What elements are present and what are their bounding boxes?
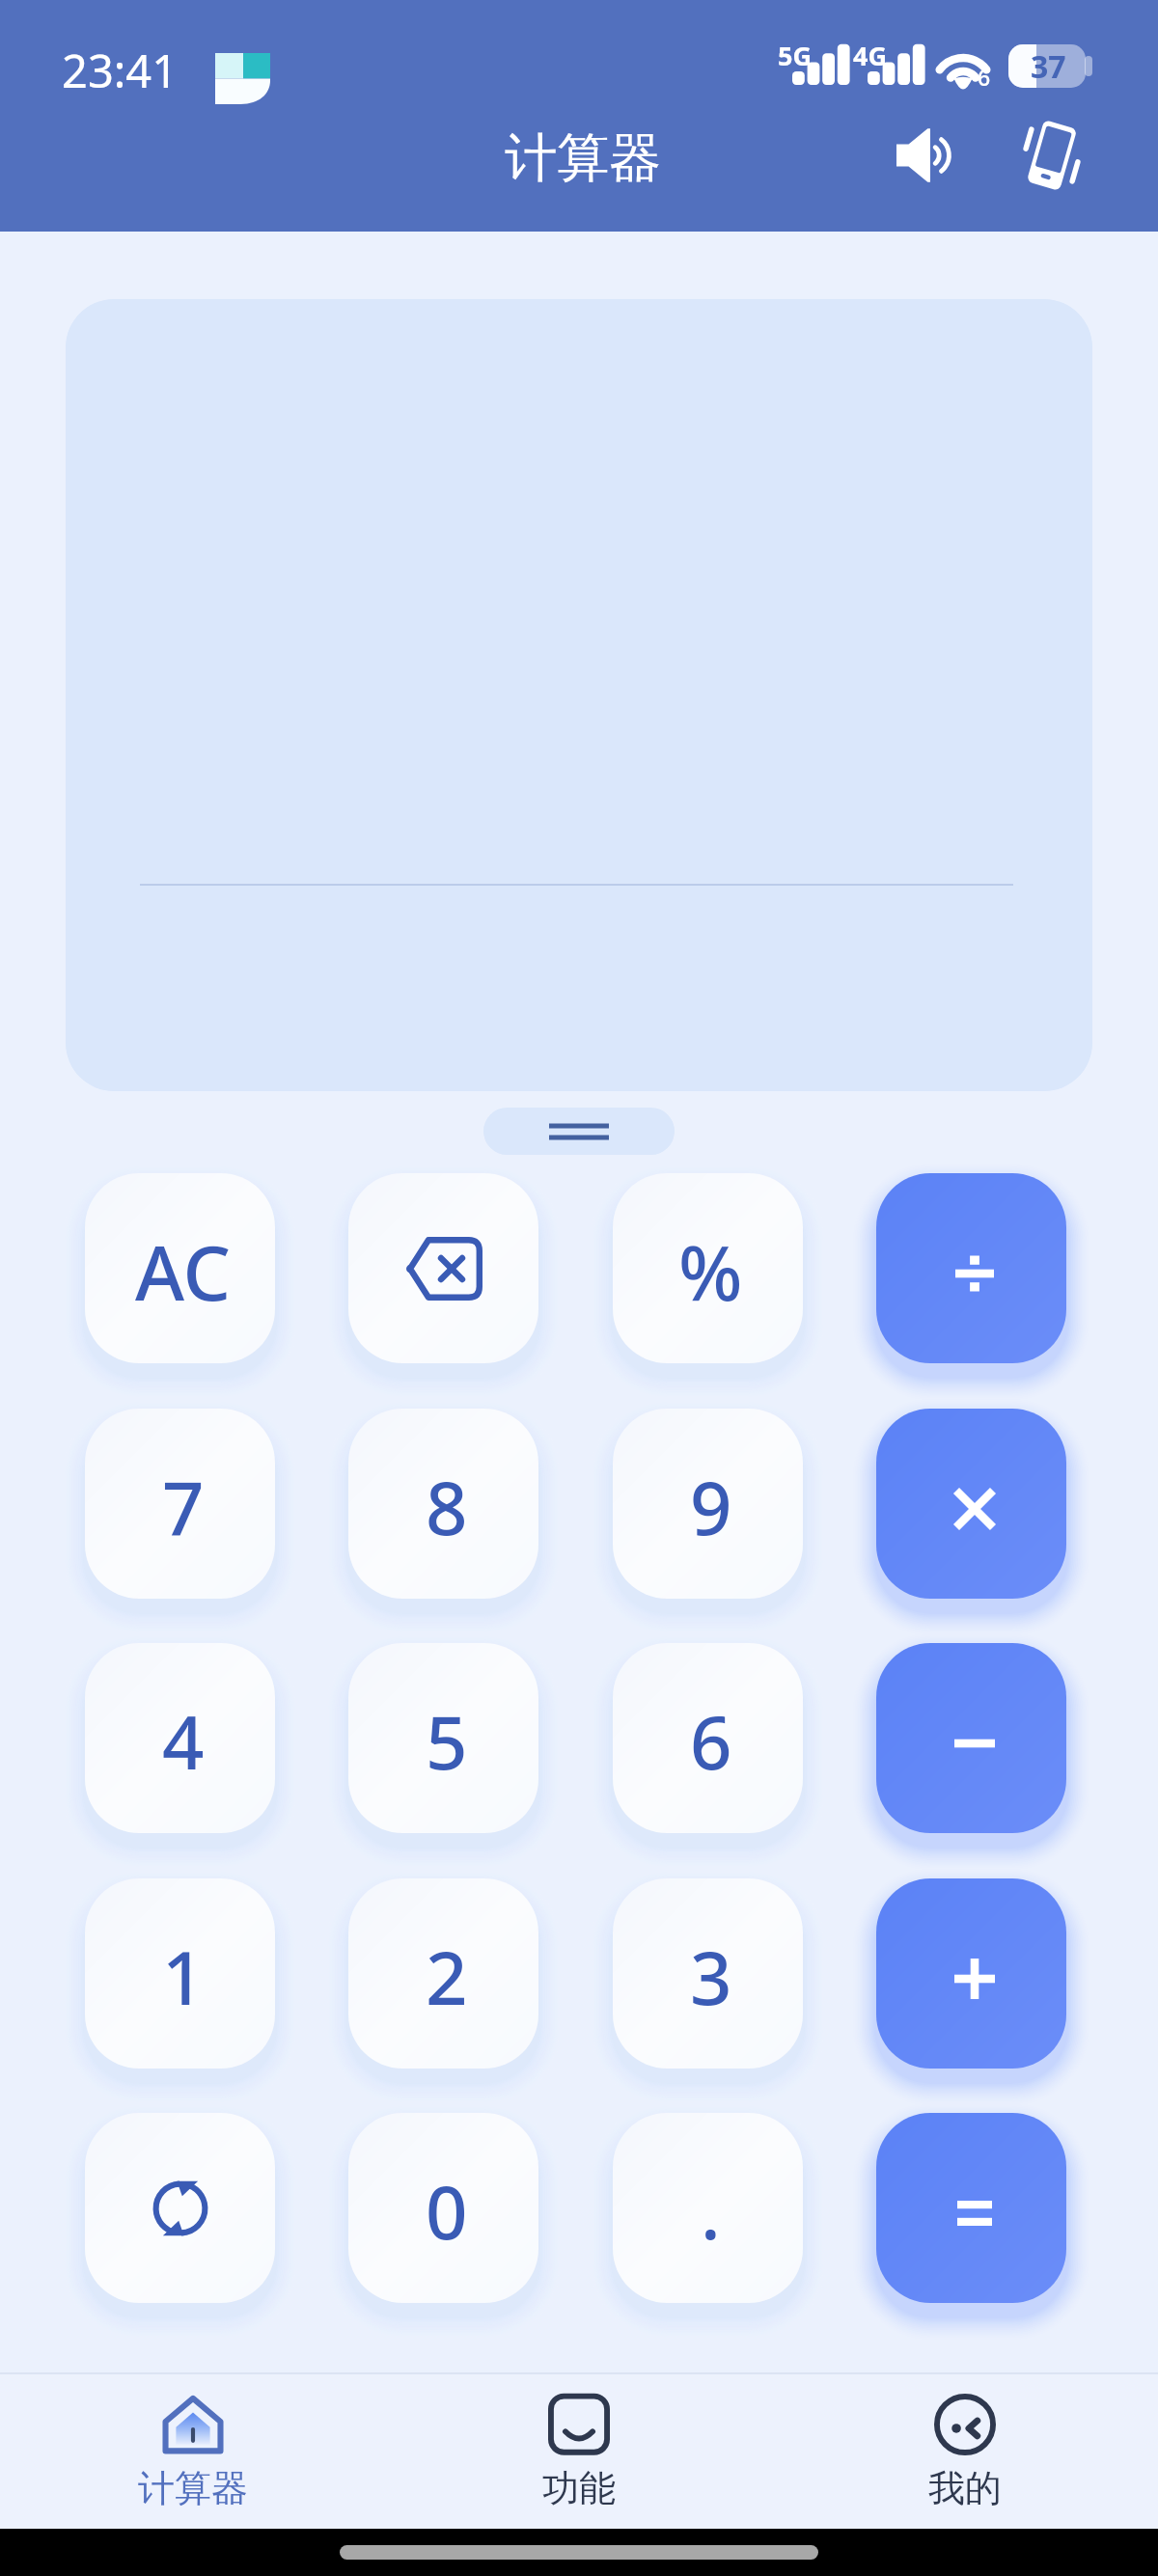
- button[interactable]: Subtract: [876, 1643, 1066, 1833]
- staticText: 计算器: [505, 125, 661, 191]
- other: Multiply: [876, 1409, 1066, 1599]
- button[interactable]: Backspace: [348, 1173, 538, 1363]
- staticText: 功能: [542, 2465, 616, 2511]
- staticText: 4: [162, 1691, 205, 1792]
- staticText: 6: [978, 62, 991, 92]
- staticText: 7: [162, 1457, 205, 1557]
- button[interactable]: 6: [613, 1643, 803, 1833]
- button[interactable]: 功能: [386, 2393, 772, 2511]
- button[interactable]: %: [613, 1173, 803, 1363]
- button[interactable]: 2: [348, 1878, 538, 2069]
- other: Divide: [876, 1173, 1066, 1363]
- button[interactable]: Vibration: [1006, 109, 1098, 202]
- button[interactable]: Equals: [876, 2113, 1066, 2303]
- staticText: 5: [426, 1691, 468, 1792]
- staticText: 2: [426, 1927, 468, 2027]
- button[interactable]: 1: [85, 1878, 275, 2069]
- button[interactable]: AC: [85, 1173, 275, 1363]
- staticText: 计算器: [138, 2465, 248, 2511]
- button[interactable]: Sound: [880, 109, 973, 202]
- staticText: 9: [690, 1457, 732, 1557]
- button[interactable]: 3: [613, 1878, 803, 2069]
- other: Backspace: [348, 1173, 538, 1363]
- button[interactable]: 9: [613, 1409, 803, 1599]
- staticText: 我的: [928, 2465, 1002, 2511]
- button[interactable]: 7: [85, 1409, 275, 1599]
- button[interactable]: Expand history: [483, 1108, 675, 1155]
- staticText: 0: [426, 2161, 468, 2261]
- button[interactable]: .: [613, 2113, 803, 2303]
- other: Equals: [876, 2113, 1066, 2303]
- button[interactable]: Divide: [876, 1173, 1066, 1363]
- button[interactable]: 计算器: [0, 2393, 386, 2511]
- staticText: 3: [690, 1927, 732, 2027]
- staticText: 23:41: [62, 40, 179, 101]
- button[interactable]: Convert: [85, 2113, 275, 2303]
- button[interactable]: Multiply: [876, 1409, 1066, 1599]
- other: Add: [876, 1878, 1066, 2069]
- staticText: 8: [426, 1457, 468, 1557]
- staticText: AC: [135, 1220, 232, 1323]
- button[interactable]: 5: [348, 1643, 538, 1833]
- button[interactable]: 8: [348, 1409, 538, 1599]
- staticText: 37: [1031, 45, 1066, 88]
- staticText: 5G: [778, 38, 812, 73]
- staticText: 6: [690, 1691, 732, 1792]
- staticText: 1: [162, 1927, 205, 2027]
- button[interactable]: 4: [85, 1643, 275, 1833]
- staticText: .: [701, 2161, 721, 2261]
- staticText: 4G: [853, 38, 887, 73]
- button[interactable]: 0: [348, 2113, 538, 2303]
- staticText: %: [678, 1220, 743, 1323]
- button[interactable]: Add: [876, 1878, 1066, 2069]
- other: Subtract: [876, 1643, 1066, 1833]
- button[interactable]: 我的: [772, 2393, 1158, 2511]
- other: Convert: [85, 2113, 275, 2303]
